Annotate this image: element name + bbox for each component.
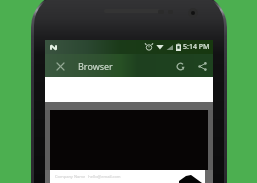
staticText: Company Name hello@email.com — [55, 174, 121, 179]
button[interactable]: Share — [194, 58, 210, 74]
button[interactable]: Close — [53, 59, 67, 73]
staticText: Browser — [78, 60, 113, 72]
staticText: 5:14 PM — [183, 42, 210, 52]
button[interactable]: Refresh — [172, 58, 188, 74]
